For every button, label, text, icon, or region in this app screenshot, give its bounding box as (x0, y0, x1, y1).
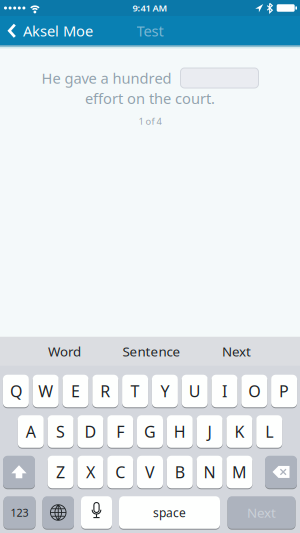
button[interactable]: E (62, 375, 88, 407)
button[interactable]: B (167, 456, 193, 488)
button[interactable]: M (226, 456, 252, 488)
button[interactable]: C (107, 456, 133, 488)
staticText: Y (160, 380, 169, 402)
staticText: L (265, 421, 273, 442)
staticText: G (144, 421, 156, 442)
staticText: E (71, 380, 80, 402)
button[interactable]: H (167, 415, 193, 448)
button[interactable]: Z (48, 456, 74, 488)
button[interactable]: space (119, 496, 220, 529)
button[interactable]: Y (152, 375, 178, 407)
button[interactable]: U (182, 375, 208, 407)
button[interactable]: Word (48, 342, 81, 360)
staticText: N (204, 461, 216, 483)
button[interactable]: Next keyboard (42, 496, 74, 529)
button[interactable]: L (256, 415, 282, 448)
staticText: Next (247, 504, 276, 521)
button[interactable]: S (48, 415, 74, 448)
staticText: P (279, 380, 289, 402)
staticText: Aksel Moe (23, 21, 93, 40)
staticText: 123 (10, 505, 28, 520)
staticText: effort on the court. (85, 88, 215, 108)
staticText: U (189, 380, 201, 402)
button[interactable]: J (197, 415, 223, 448)
button[interactable]: F (107, 415, 133, 448)
staticText: K (234, 421, 244, 442)
button[interactable]: Answer blank (180, 68, 258, 88)
button[interactable]: I (211, 375, 237, 407)
staticText: C (115, 461, 125, 483)
staticText: 1 of 4 (138, 115, 161, 127)
button[interactable]: 123 (3, 496, 35, 529)
button[interactable]: W (33, 375, 59, 407)
staticText: Word (48, 342, 81, 360)
staticText: W (38, 380, 53, 402)
button[interactable]: O (241, 375, 267, 407)
staticText: B (175, 461, 185, 483)
staticText: S (56, 421, 65, 442)
staticText: He gave a hundred (41, 68, 171, 88)
button[interactable]: D (77, 415, 103, 448)
button[interactable]: Shift (3, 456, 35, 488)
button[interactable]: Sentence (122, 342, 180, 360)
staticText: Q (10, 380, 22, 402)
button[interactable]: Next (227, 496, 295, 529)
staticText: space (153, 504, 186, 520)
staticText: Sentence (122, 342, 180, 360)
button[interactable]: Test (136, 21, 163, 40)
staticText: A (26, 421, 36, 442)
button[interactable]: A (18, 415, 44, 448)
staticText: J (208, 421, 212, 442)
button[interactable]: V (137, 456, 163, 488)
staticText: R (100, 380, 110, 402)
button[interactable]: Dictation (81, 496, 112, 529)
staticText: Z (56, 461, 65, 483)
button[interactable]: P (271, 375, 297, 407)
staticText: 9:41 AM (132, 2, 167, 14)
button[interactable]: Aksel Moe (0, 21, 93, 40)
staticText: H (174, 421, 186, 442)
staticText: Test (136, 21, 163, 40)
staticText: V (145, 461, 155, 483)
button[interactable]: N (197, 456, 223, 488)
button[interactable]: X (77, 456, 103, 488)
staticText: T (131, 380, 140, 402)
button[interactable]: Delete (265, 456, 297, 488)
staticText: F (116, 421, 124, 442)
staticText: X (86, 461, 95, 483)
button[interactable]: G (137, 415, 163, 448)
button[interactable]: K (226, 415, 252, 448)
button[interactable]: T (122, 375, 148, 407)
button[interactable]: R (92, 375, 118, 407)
staticText: M (232, 461, 247, 483)
staticText: I (222, 380, 227, 402)
staticText: Next (222, 342, 251, 360)
staticText: D (84, 421, 96, 442)
staticText: O (248, 380, 260, 402)
button[interactable]: Q (3, 375, 29, 407)
button[interactable]: Next (222, 342, 251, 360)
